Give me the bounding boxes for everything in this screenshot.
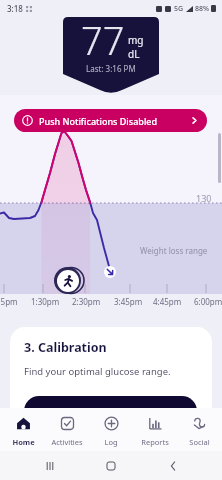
staticText: 77 [81,14,125,66]
staticText: Last: 3:16 PM [86,63,136,74]
button[interactable] [24,396,197,426]
staticText: 2:30pm [72,296,101,307]
button[interactable]: Recents [38,454,62,478]
button[interactable]: Activities [46,408,88,451]
staticText: 6:00pm [194,296,222,307]
button[interactable]: Activity [54,267,81,294]
staticText: 1:30pm [31,296,60,307]
staticText: dL [128,47,140,61]
staticText: 5G [174,4,184,14]
button[interactable]: Home [99,454,123,478]
staticText: 3:18 [7,3,23,14]
button[interactable]: Log [90,408,132,451]
staticText: mg [128,33,144,47]
staticText: Home [12,437,35,447]
staticText: 88% [195,4,209,14]
staticText: 3:45pm [114,296,143,307]
staticText: Log [104,437,118,447]
button[interactable]: Push Notifications Disabled [14,109,207,132]
staticText: 15pm [0,296,18,307]
staticText: 130 [196,192,212,204]
button[interactable]: Social [178,408,220,451]
staticText: Find your optimal glucose range. [24,365,171,378]
staticText: Reports [141,437,169,447]
button[interactable]: Back [161,454,185,478]
button[interactable]: Reports [134,408,176,451]
staticText: Activities [51,437,83,447]
staticText: 4:45pm [153,296,182,307]
staticText: Weight loss range [140,245,208,256]
staticText: Push Notifications Disabled [39,115,158,127]
staticText: Social [189,437,210,447]
button[interactable]: Home [2,408,44,451]
staticText: 3. Calibration [24,339,107,356]
